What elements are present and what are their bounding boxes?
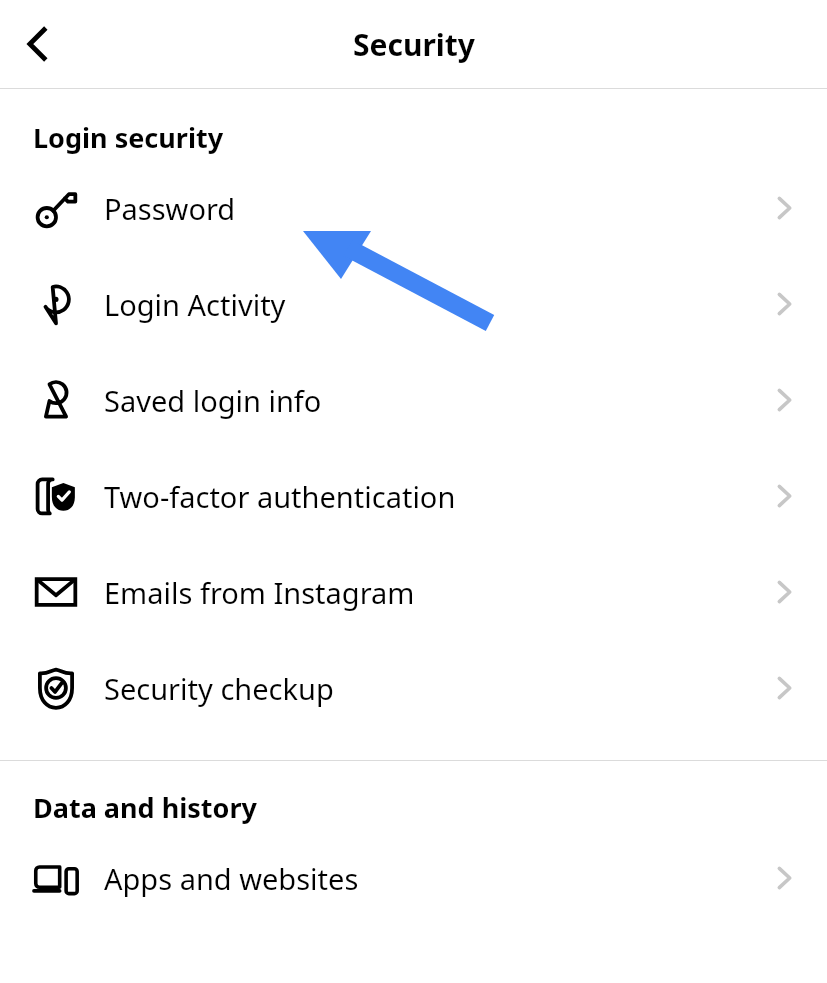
button[interactable]: Password bbox=[0, 160, 827, 256]
staticText: Login Activity bbox=[104, 285, 771, 324]
button[interactable]: Apps and websites bbox=[0, 830, 827, 926]
staticText: Password bbox=[104, 189, 771, 228]
staticText: Two-factor authentication bbox=[104, 477, 771, 516]
button[interactable]: Login Activity bbox=[0, 256, 827, 352]
button[interactable]: Two-factor authentication bbox=[0, 448, 827, 544]
staticText: Login security bbox=[33, 119, 224, 156]
staticText: Security checkup bbox=[104, 669, 771, 708]
button[interactable]: Saved login info bbox=[0, 352, 827, 448]
staticText: Emails from Instagram bbox=[104, 573, 771, 612]
button[interactable]: Security checkup bbox=[0, 640, 827, 736]
button[interactable]: Emails from Instagram bbox=[0, 544, 827, 640]
button[interactable]: Back bbox=[4, 10, 72, 78]
staticText: Security bbox=[353, 24, 475, 65]
staticText: Saved login info bbox=[104, 381, 771, 420]
staticText: Apps and websites bbox=[104, 859, 771, 898]
staticText: Data and history bbox=[33, 789, 257, 826]
